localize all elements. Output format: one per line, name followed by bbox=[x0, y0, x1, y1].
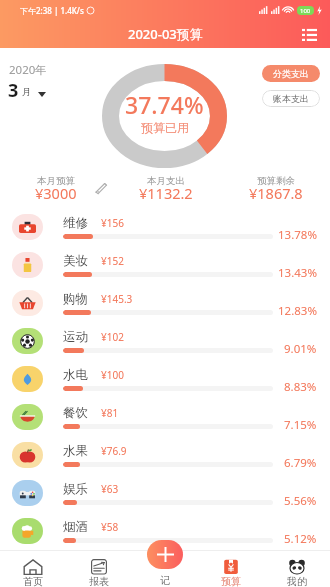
staticText: ¥1132.2 bbox=[139, 183, 193, 203]
button[interactable]: 娱乐 bbox=[0, 471, 330, 509]
button[interactable]: 运动 bbox=[0, 319, 330, 357]
button[interactable]: 分类支出 bbox=[262, 65, 320, 82]
staticText: 2020-03预算 bbox=[128, 25, 203, 43]
staticText: 2020年 bbox=[9, 62, 47, 78]
staticText: 水果 bbox=[63, 443, 88, 459]
button[interactable]: 报表 bbox=[66, 551, 132, 587]
staticText: 13.78% bbox=[278, 227, 317, 243]
staticText: 娱乐 bbox=[63, 481, 88, 497]
button[interactable]: 账本支出 bbox=[262, 90, 320, 107]
button[interactable]: 烟酒 bbox=[0, 509, 330, 547]
staticText: ¥102 bbox=[101, 330, 124, 344]
staticText: ¥100 bbox=[101, 368, 124, 382]
staticText: 本月支出 bbox=[147, 175, 185, 187]
button[interactable]: 首页 bbox=[0, 551, 66, 587]
staticText: 记 bbox=[160, 574, 170, 587]
staticText: ¥58 bbox=[101, 520, 119, 534]
button[interactable]: 我的 bbox=[264, 551, 330, 587]
staticText: 水电 bbox=[63, 367, 88, 383]
staticText: 报表 bbox=[89, 575, 109, 587]
staticText: 美妆 bbox=[63, 253, 88, 269]
staticText: 9.01% bbox=[284, 341, 317, 357]
staticText: 我的 bbox=[287, 575, 307, 587]
staticText: ¥152 bbox=[101, 254, 124, 268]
staticText: 5.56% bbox=[284, 493, 317, 509]
staticText: 3 bbox=[8, 78, 19, 103]
button[interactable]: 水电 bbox=[0, 357, 330, 395]
button[interactable]: 维修 bbox=[0, 205, 330, 243]
button[interactable]: Menu bbox=[296, 21, 322, 47]
staticText: 下午2:38 | 1.4K/s bbox=[20, 5, 84, 16]
staticText: 5.12% bbox=[284, 531, 317, 547]
staticText: 餐饮 bbox=[63, 405, 88, 421]
staticText: 烟酒 bbox=[63, 519, 88, 535]
staticText: ¥3000 bbox=[35, 183, 77, 203]
staticText: 预算已用 bbox=[141, 120, 189, 135]
staticText: 8.83% bbox=[284, 379, 317, 395]
staticText: 预算剩余 bbox=[257, 175, 295, 187]
staticText: 6.79% bbox=[284, 455, 317, 471]
staticText: ¥145.3 bbox=[101, 292, 133, 306]
staticText: 购物 bbox=[63, 291, 88, 307]
staticText: 运动 bbox=[63, 329, 88, 345]
button[interactable]: Add record bbox=[147, 540, 183, 569]
button[interactable]: 购物 bbox=[0, 281, 330, 319]
staticText: 分类支出 bbox=[273, 68, 309, 79]
staticText: 本月预算 bbox=[37, 175, 75, 187]
staticText: 12.83% bbox=[278, 303, 317, 319]
button[interactable]: 水果 bbox=[0, 433, 330, 471]
staticText: 预算 bbox=[221, 575, 241, 587]
staticText: ¥81 bbox=[101, 406, 119, 420]
staticText: 13.43% bbox=[278, 265, 317, 281]
button[interactable]: 预算 bbox=[198, 551, 264, 587]
button[interactable]: 餐饮 bbox=[0, 395, 330, 433]
staticText: 7.15% bbox=[284, 417, 317, 433]
staticText: ¥63 bbox=[101, 482, 119, 496]
staticText: ¥156 bbox=[101, 216, 124, 230]
button[interactable]: 2020年 bbox=[9, 62, 47, 78]
button[interactable]: 记 bbox=[160, 574, 170, 587]
staticText: 首页 bbox=[23, 575, 43, 587]
staticText: 维修 bbox=[63, 215, 88, 231]
staticText: ¥76.9 bbox=[101, 444, 127, 458]
staticText: ¥1867.8 bbox=[249, 183, 303, 203]
staticText: 账本支出 bbox=[273, 93, 309, 104]
staticText: 37.74% bbox=[125, 89, 204, 120]
button[interactable]: 美妆 bbox=[0, 243, 330, 281]
staticText: 月 bbox=[22, 86, 32, 98]
staticText: 100 bbox=[300, 7, 311, 15]
